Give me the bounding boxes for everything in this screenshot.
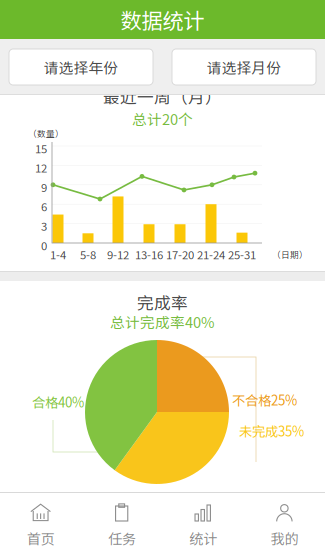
staticText: 12: [35, 159, 47, 176]
staticText: 统计: [189, 528, 217, 548]
staticText: 6: [41, 198, 47, 215]
staticText: 0: [41, 237, 47, 253]
staticText: 合格40%: [32, 392, 84, 411]
staticText: 数据统计: [120, 4, 204, 35]
staticText: （数量）: [28, 127, 64, 139]
button[interactable]: 统计: [162, 492, 244, 550]
staticText: 5-8: [80, 246, 96, 262]
staticText: 请选择年份: [43, 56, 118, 78]
staticText: 完成率: [137, 290, 188, 314]
staticText: 不合格25%: [232, 390, 297, 409]
staticText: （日期）: [272, 248, 308, 260]
button[interactable]: 请选择年份: [9, 49, 153, 85]
staticText: 请选择月份: [206, 56, 281, 78]
staticText: 总计20个: [132, 108, 193, 129]
staticText: 9-12: [107, 246, 129, 262]
staticText: 1-4: [50, 246, 66, 262]
staticText: 9: [41, 179, 47, 195]
staticText: 15: [35, 140, 47, 156]
button[interactable]: 任务: [81, 492, 162, 550]
staticText: 17-20: [166, 246, 194, 262]
staticText: 21-24: [197, 246, 225, 262]
staticText: 25-31: [228, 246, 256, 262]
staticText: 3: [41, 218, 47, 234]
staticText: 首页: [27, 528, 55, 548]
staticText: 最近一周（月）: [103, 84, 222, 108]
staticText: 任务: [108, 528, 136, 548]
button[interactable]: 首页: [0, 492, 81, 550]
staticText: 未完成35%: [239, 421, 304, 440]
staticText: 总计完成率40%: [110, 311, 215, 332]
button[interactable]: 我的: [244, 492, 325, 550]
staticText: 我的: [270, 528, 298, 548]
staticText: 13-16: [135, 246, 163, 262]
button[interactable]: 请选择月份: [172, 49, 316, 85]
